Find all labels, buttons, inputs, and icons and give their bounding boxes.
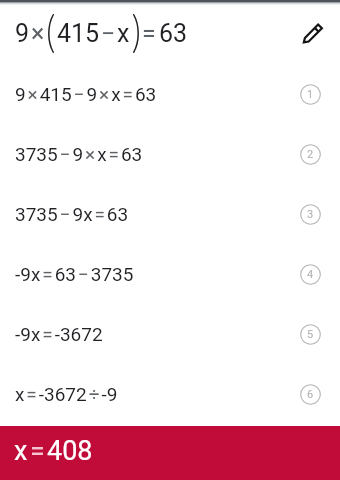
staticText: 3735 − 9x = 63: [15, 203, 129, 225]
staticText: =: [142, 19, 156, 48]
staticText: 3: [307, 208, 314, 221]
button[interactable]: 9 × 415 − 9 × x = 63: [0, 64, 340, 124]
staticText: =: [30, 435, 45, 467]
staticText: 3735 − 9 × x = 63: [15, 143, 143, 165]
button[interactable]: -9x = -3672: [0, 304, 340, 364]
staticText: x: [117, 19, 130, 48]
staticText: 6: [307, 388, 314, 401]
button[interactable]: -9x = 63 − 3735: [0, 244, 340, 304]
staticText: 1: [307, 88, 314, 101]
staticText: 63: [159, 19, 188, 48]
button[interactable]: 3735 − 9x = 63: [0, 184, 340, 244]
staticText: −: [101, 19, 116, 48]
staticText: 5: [307, 328, 314, 341]
staticText: 2: [307, 148, 314, 161]
button[interactable]: x = -3672 ÷ -9: [0, 364, 340, 424]
button[interactable]: Edit expression: [292, 11, 334, 53]
staticText: 4: [307, 268, 314, 281]
button[interactable]: 3735 − 9 × x = 63: [0, 124, 340, 184]
button[interactable]: x: [0, 426, 340, 480]
staticText: 9: [15, 19, 30, 48]
staticText: -9x = 63 − 3735: [15, 263, 134, 285]
staticText: 415: [57, 19, 100, 48]
staticText: x = -3672 ÷ -9: [15, 383, 118, 405]
staticText: -9x = -3672: [15, 323, 103, 345]
staticText: ×: [31, 19, 45, 48]
staticText: 9 × 415 − 9 × x = 63: [15, 83, 157, 105]
staticText: 408: [47, 435, 93, 467]
staticText: x: [14, 435, 28, 467]
